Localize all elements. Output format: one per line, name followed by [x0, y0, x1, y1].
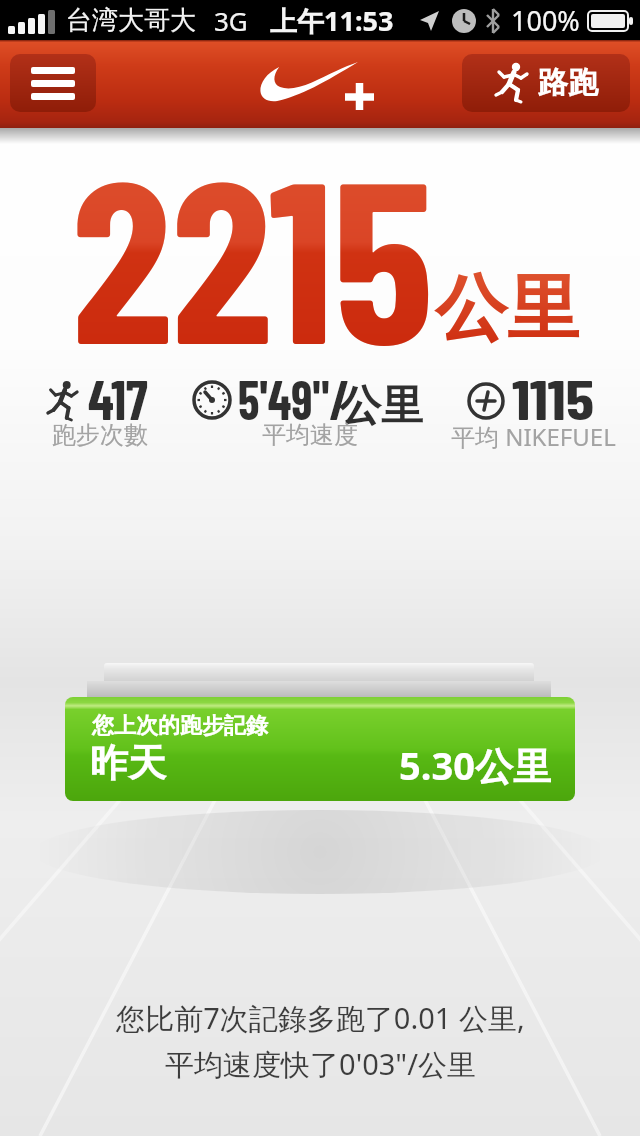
staticText: 2215	[72, 116, 434, 390]
staticText: 上午11:53	[270, 2, 394, 39]
staticText: 3G	[214, 3, 248, 38]
button[interactable]	[10, 54, 96, 112]
staticText: 平均 NIKEFUEL	[451, 420, 616, 453]
button[interactable]: 您上次的跑步記錄	[65, 697, 575, 801]
staticText: 417	[88, 364, 148, 431]
button[interactable]: 路跑	[462, 54, 630, 112]
button[interactable]	[258, 58, 376, 110]
staticText: 昨天	[90, 739, 166, 787]
staticText: 平均速度	[262, 420, 358, 450]
staticText: 您比前7次記錄多跑了0.01 公里,	[116, 998, 525, 1038]
staticText: 台湾大哥大	[66, 4, 196, 37]
staticText: 公里	[339, 380, 423, 433]
staticText: 5.30公里	[399, 739, 551, 791]
staticText: 您上次的跑步記錄	[92, 712, 268, 740]
staticText: 路跑	[538, 64, 598, 102]
staticText: 平均速度快了0'03"/公里	[165, 1044, 476, 1084]
staticText: 5'49"/	[238, 364, 350, 431]
staticText: 跑步次數	[52, 420, 148, 450]
staticText: 公里	[435, 264, 579, 355]
staticText: 1115	[512, 364, 595, 431]
staticText: 100%	[511, 2, 580, 39]
